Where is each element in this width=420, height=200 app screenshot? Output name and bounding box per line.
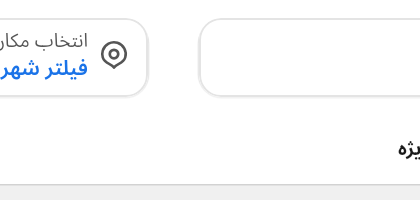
staticText: انتخاب مکان bbox=[0, 27, 88, 53]
staticText: فیلتر شهر bbox=[0, 53, 88, 82]
other: انتخاب مکان bbox=[100, 41, 128, 69]
button[interactable]: انتخاب مکان bbox=[0, 18, 148, 97]
button[interactable] bbox=[199, 18, 420, 97]
staticText: پیشنهادهای ویژه bbox=[398, 135, 420, 161]
